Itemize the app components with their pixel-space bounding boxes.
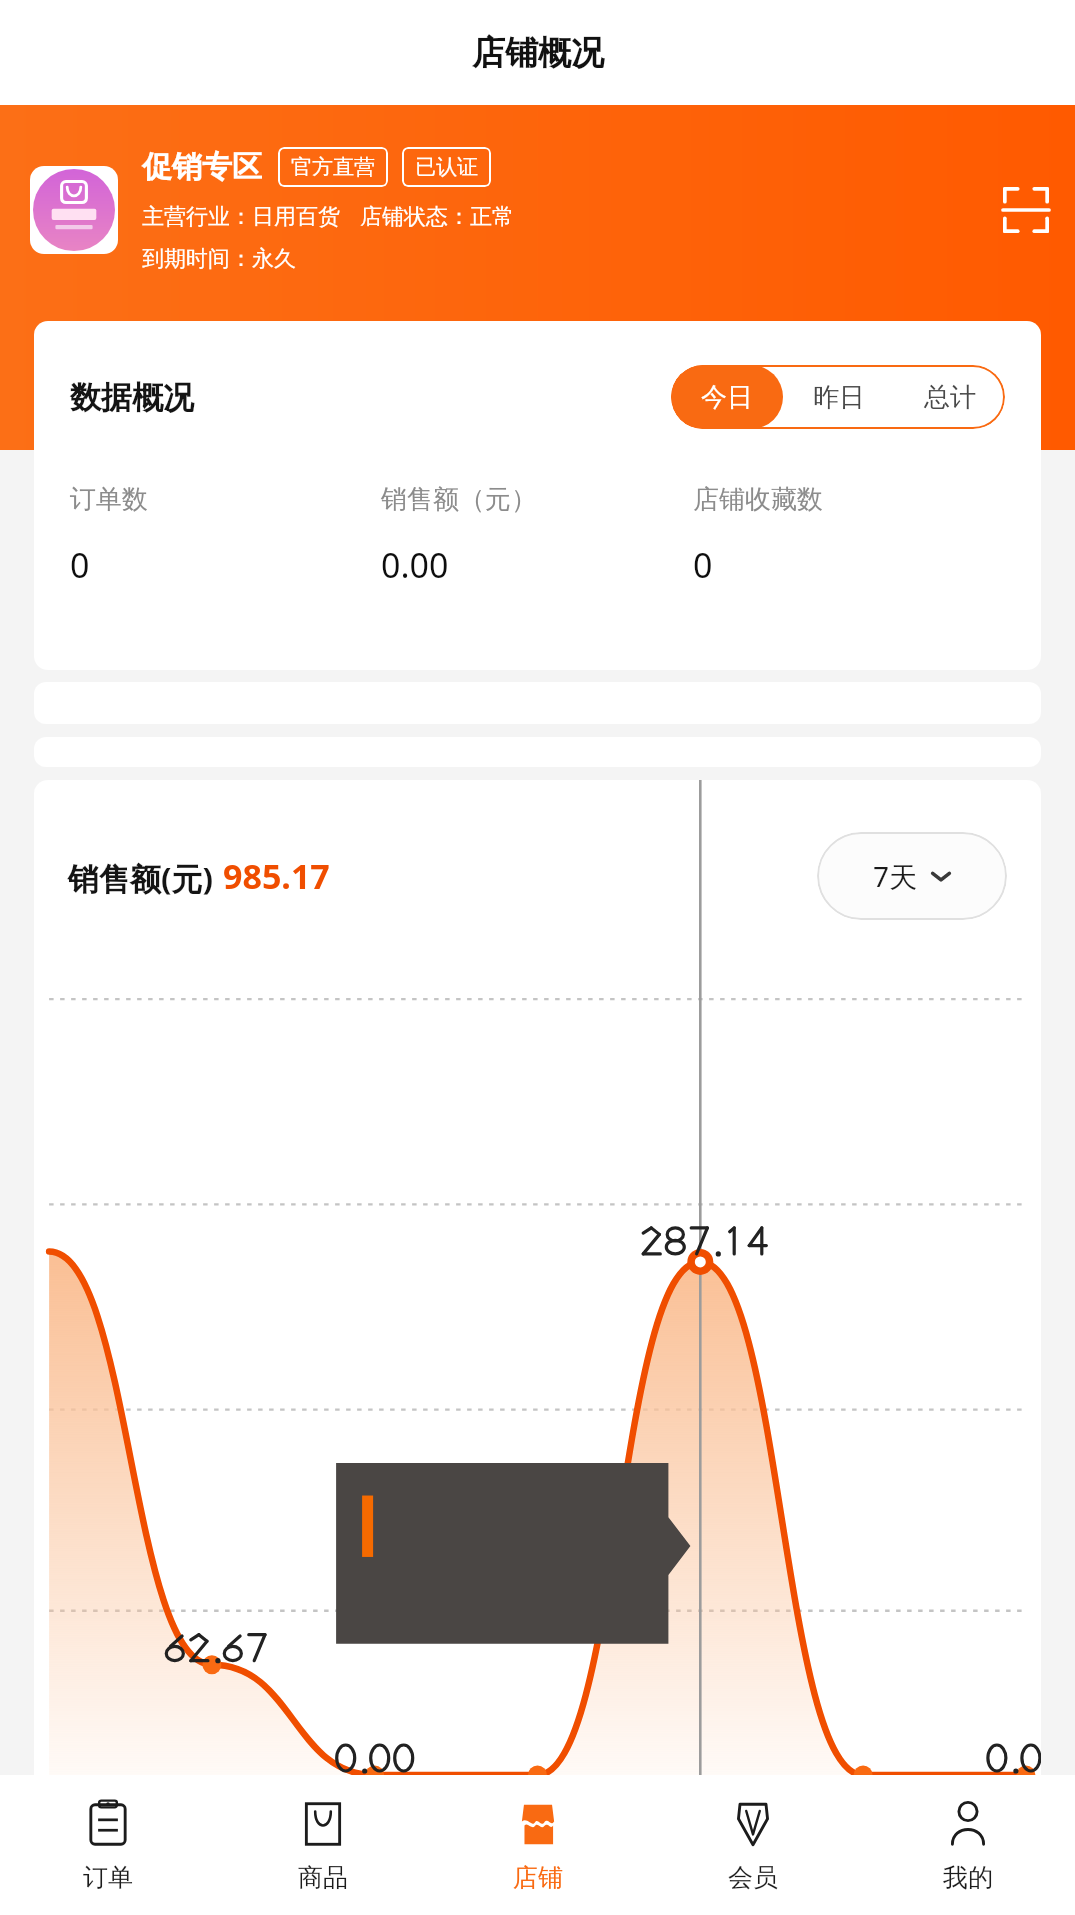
staticText: 会员 <box>728 1862 778 1893</box>
staticText: 数据概况 <box>70 378 194 417</box>
staticText: 到期时间：永久 <box>142 245 296 273</box>
staticText: 销售额(元) <box>68 857 214 899</box>
staticText: 店铺收藏数 <box>693 483 823 516</box>
button[interactable]: 今日 <box>671 365 783 429</box>
staticText: 店铺概况 <box>472 32 604 74</box>
staticText: 今日 <box>701 381 753 414</box>
staticText: 促销专区 <box>142 148 262 186</box>
staticText: 985.17 <box>223 853 330 899</box>
staticText: 商品 <box>298 1862 348 1893</box>
staticText: 总计 <box>924 381 976 414</box>
staticText: 订单数 <box>70 483 148 516</box>
button[interactable]: 7天 <box>817 832 1007 920</box>
button[interactable]: 店铺 <box>430 1775 645 1915</box>
staticText: 店铺状态：正常 <box>360 203 514 231</box>
staticText: 店铺 <box>513 1862 563 1893</box>
staticText: 0 <box>70 542 90 588</box>
staticText: 已认证 <box>415 154 478 180</box>
staticText: 订单 <box>83 1862 133 1893</box>
button[interactable]: 我的 <box>860 1775 1075 1915</box>
staticText: 官方直营 <box>291 154 375 180</box>
staticText: 0 <box>693 542 713 588</box>
staticText: 0.00 <box>381 542 449 588</box>
button[interactable]: Scan QR code <box>999 183 1053 237</box>
staticText: 主营行业：日用百货 <box>142 203 340 231</box>
staticText: 昨日 <box>813 381 865 414</box>
staticText: 我的 <box>943 1862 993 1893</box>
staticText: 销售额（元） <box>381 483 537 516</box>
button[interactable]: 昨日 <box>783 365 894 429</box>
staticText: 7天 <box>873 857 918 895</box>
button[interactable]: 会员 <box>645 1775 860 1915</box>
button[interactable]: 商品 <box>215 1775 430 1915</box>
button[interactable]: 订单 <box>0 1775 215 1915</box>
button[interactable]: 总计 <box>894 365 1005 429</box>
